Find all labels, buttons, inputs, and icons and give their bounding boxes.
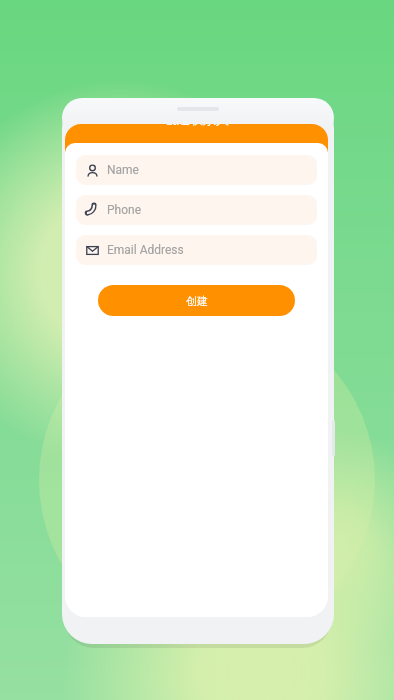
button[interactable]: Email Address: [76, 235, 317, 265]
button[interactable]: Name: [76, 155, 317, 185]
staticText: Name: [107, 163, 139, 177]
staticText: Phone: [107, 203, 142, 217]
staticText: 创建联系人: [164, 124, 229, 127]
button[interactable]: Phone: [76, 195, 317, 225]
staticText: Email Address: [107, 243, 184, 257]
button[interactable]: 创建: [98, 285, 295, 316]
staticText: 创建: [186, 294, 208, 308]
